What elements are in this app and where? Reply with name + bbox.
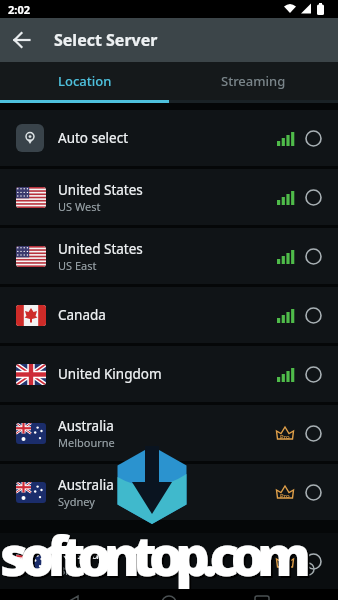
button[interactable] [305,366,322,383]
staticText: Melbourne [58,435,115,450]
staticText: softontop.com [2,520,306,594]
button[interactable] [305,130,322,147]
staticText: softontop.com [0,518,304,592]
staticText: Sydney [58,494,95,509]
button[interactable]: United Kingdom [0,346,338,402]
staticText: United Kingdom [58,365,162,383]
button[interactable] [305,484,322,501]
staticText: United States [58,181,143,199]
button[interactable]: Auto select [0,110,338,166]
staticText: Pro [280,433,290,441]
button[interactable] [0,18,44,62]
staticText: Location [58,72,112,90]
staticText: Pro [280,492,290,500]
staticText: Pro [280,561,290,569]
staticText: Australia [58,476,114,494]
button[interactable] [305,307,322,324]
button[interactable]: Australia [0,405,338,461]
button[interactable]: Australia [0,533,338,589]
staticText: Australia [58,545,114,563]
staticText: Select Server [54,29,158,51]
staticText: Brisbane [58,563,104,578]
staticText: Auto select [58,129,129,147]
button[interactable]: Location [0,62,169,100]
button[interactable]: United States [0,228,338,284]
staticText: 2:02 [8,2,30,17]
staticText: Canada [58,306,106,324]
button[interactable] [305,248,322,265]
button[interactable]: Canada [0,287,338,343]
button[interactable]: United States [0,169,338,225]
button[interactable]: Australia [0,464,338,520]
staticText: Australia [58,417,114,435]
button[interactable] [305,553,322,570]
staticText: Streaming [221,72,286,90]
staticText: US East [58,258,97,273]
button[interactable]: Streaming [169,62,338,100]
staticText: United States [58,240,143,258]
button[interactable] [305,425,322,442]
button[interactable] [305,189,322,206]
staticText: US West [58,199,101,214]
